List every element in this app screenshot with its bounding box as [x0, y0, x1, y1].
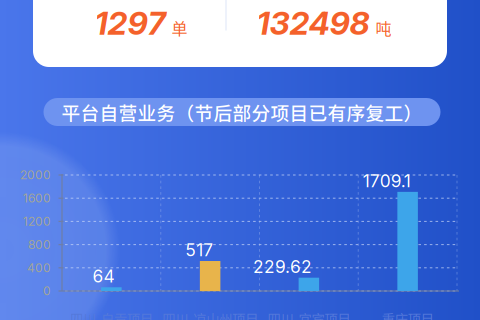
staticText: 1200: [23, 214, 51, 229]
staticText: 64: [92, 266, 114, 287]
staticText: 1709.1: [363, 170, 411, 191]
staticText: 1297: [94, 4, 165, 42]
staticText: 800: [28, 237, 51, 252]
staticText: 0: [43, 284, 51, 298]
staticText: 四川-自贡项目: [70, 309, 153, 320]
staticText: 2000: [20, 168, 51, 182]
staticText: 单: [171, 16, 187, 39]
staticText: 132498: [256, 4, 369, 42]
staticText: 517: [185, 239, 213, 260]
staticText: 四川-凉山州项目: [162, 309, 258, 320]
staticText: 吨: [375, 16, 391, 39]
staticText: 平台自营业务（节后部分项目已有序复工）: [61, 98, 422, 125]
staticText: 四川-宜宾项目: [267, 309, 350, 320]
staticText: 重庆项目: [382, 309, 434, 320]
staticText: 400: [27, 260, 51, 275]
staticText: 1600: [23, 191, 51, 205]
staticText: 229.62: [253, 256, 312, 277]
